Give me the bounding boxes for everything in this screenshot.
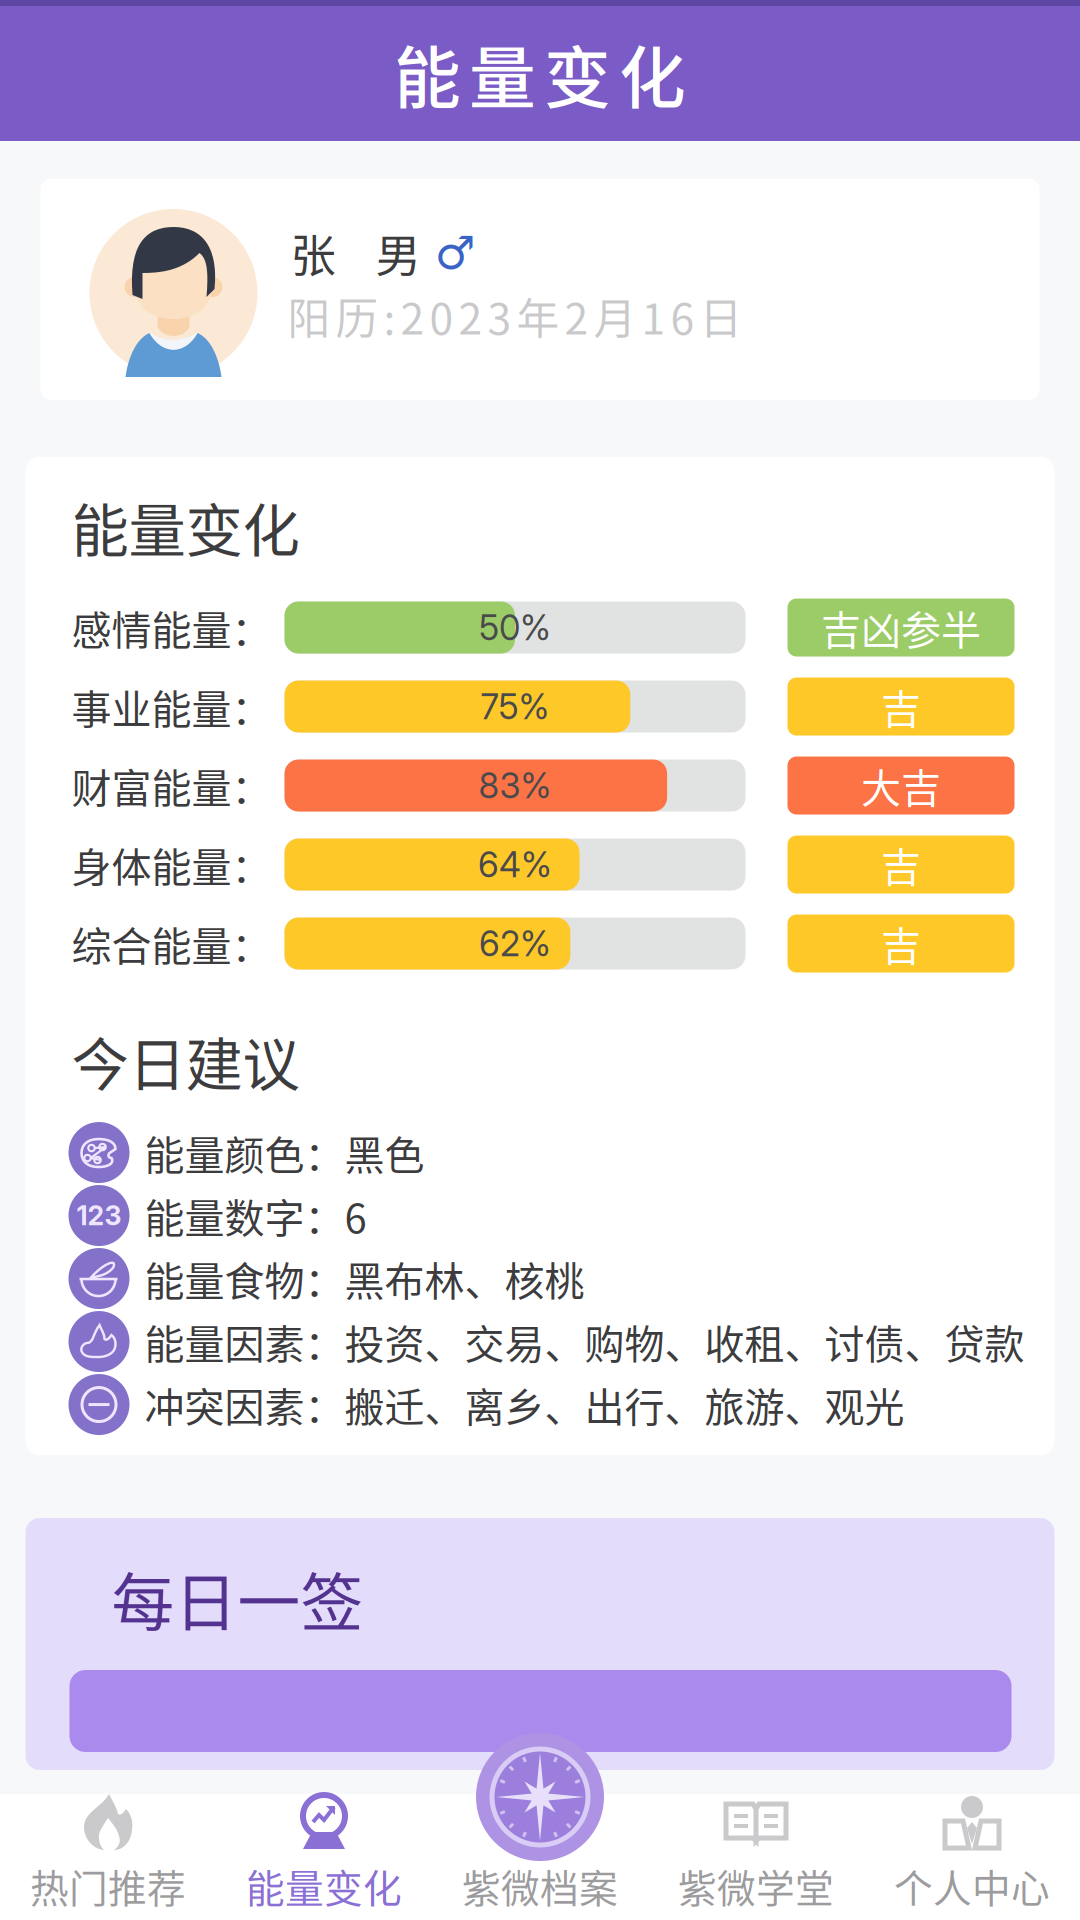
staticText: 今日建议	[71, 1019, 299, 1102]
staticText: 能量变化	[394, 25, 686, 122]
staticText: 个人中心	[894, 1858, 1050, 1914]
staticText: 大吉	[861, 757, 941, 814]
button[interactable]: 每日一签	[25, 1518, 1054, 1770]
staticText: 阳历:2023年2月16日	[287, 285, 742, 347]
staticText: 123	[76, 1199, 121, 1232]
button[interactable]: 紫微档案	[432, 1794, 648, 1920]
staticText: 能量变化	[246, 1858, 402, 1914]
staticText: 能量数字：6	[144, 1187, 366, 1244]
staticText: 75%	[480, 685, 549, 727]
staticText: 冲突因素：搬迁、离乡、出行、旅游、观光	[144, 1376, 904, 1433]
staticText: 吉	[881, 678, 921, 735]
staticText: 吉凶参半	[821, 599, 981, 656]
staticText: 感情能量：	[71, 599, 271, 656]
staticText: 事业能量：	[71, 678, 271, 735]
staticText: 能量变化	[71, 485, 299, 568]
staticText: 综合能量：	[71, 915, 271, 972]
staticText: 身体能量：	[71, 836, 271, 893]
staticText: 50%	[479, 606, 551, 648]
staticText: 能量颜色：黑色	[144, 1124, 424, 1181]
staticText: 吉	[881, 836, 921, 893]
staticText: 每日一签	[111, 1553, 363, 1643]
staticText: 64%	[478, 843, 552, 885]
staticText: 紫微学堂	[678, 1858, 834, 1914]
staticText: 热门推荐	[30, 1858, 186, 1914]
button[interactable]: 热门推荐	[0, 1794, 216, 1920]
staticText: 能量食物：黑布林、核桃	[144, 1250, 584, 1307]
staticText: 张 男	[290, 220, 420, 286]
button[interactable]: 能量变化	[216, 1794, 432, 1920]
button[interactable]: 张 男	[40, 179, 1039, 400]
staticText: 62%	[479, 922, 551, 964]
staticText: 吉	[881, 915, 921, 972]
staticText: 83%	[478, 764, 551, 806]
staticText: 紫微档案	[462, 1858, 618, 1914]
staticText: 财富能量：	[71, 757, 271, 814]
button[interactable]: 个人中心	[864, 1794, 1080, 1920]
staticText: ♂	[420, 227, 475, 279]
button[interactable]: 紫微学堂	[648, 1794, 864, 1920]
staticText: 能量因素：投资、交易、购物、收租、讨债、贷款	[144, 1313, 1024, 1370]
